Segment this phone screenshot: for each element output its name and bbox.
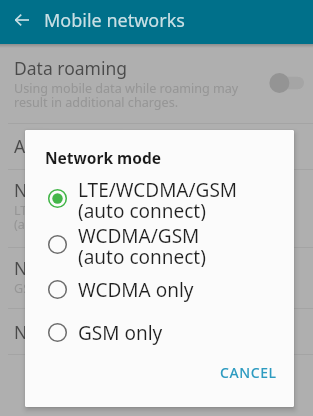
button[interactable]: WCDMA only xyxy=(25,268,294,312)
staticText: WCDMA/GSM (auto connect) xyxy=(78,223,206,267)
button[interactable]: Network settings xyxy=(14,320,299,344)
staticText: LTE/WCDMA/GSM (auto connect) xyxy=(78,177,238,221)
staticText: Network mode xyxy=(14,178,137,202)
staticText: Mobile networks xyxy=(44,8,185,33)
button[interactable]: Network operators xyxy=(14,256,299,297)
button[interactable]: WCDMA/GSM (auto connect) xyxy=(25,223,294,267)
button[interactable]: Data roaming xyxy=(14,56,299,110)
staticText: Data roaming xyxy=(14,56,128,80)
staticText: Network mode xyxy=(45,147,161,168)
button[interactable]: CANCEL xyxy=(214,357,282,387)
staticText: GSM xyxy=(14,280,42,297)
button[interactable]: GSM only xyxy=(25,311,294,355)
staticText: LTE/WCDMA/GSM (auto connect) xyxy=(14,202,120,232)
button[interactable]: Network mode xyxy=(14,178,299,232)
staticText: GSM only xyxy=(78,320,163,346)
button[interactable]: Navigate up xyxy=(0,0,44,42)
staticText: Network settings xyxy=(14,320,155,344)
button[interactable]: LTE/WCDMA/GSM (auto connect) xyxy=(25,177,294,221)
staticText: WCDMA only xyxy=(78,277,194,303)
staticText: Access Point Names xyxy=(14,134,179,158)
button[interactable]: Access Point Names xyxy=(14,134,299,158)
button[interactable]: Data roaming switch xyxy=(266,72,308,94)
staticText: Network operators xyxy=(14,256,170,280)
staticText: CANCEL xyxy=(220,363,277,382)
staticText: Using mobile data while roaming may resu… xyxy=(14,80,239,110)
